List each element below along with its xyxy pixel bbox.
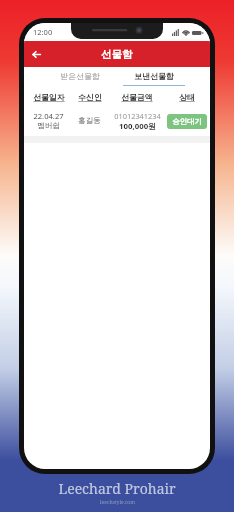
staticText: 100,000원 [119,121,156,132]
staticText: Leechard Prohair [58,479,176,498]
staticText: leechstyle.com [100,499,135,506]
staticText: 22.04.27 [33,111,64,121]
button[interactable]: 22.04.27 [24,106,210,136]
button[interactable]: 승인대기 [167,114,207,129]
button[interactable]: 받은선물함 [49,67,111,88]
staticText: 승인대기 [172,117,202,126]
staticText: 상태 [179,92,195,102]
staticText: 선물함 [101,48,133,61]
staticText: 홍길동 [78,116,101,126]
staticText: 받은선물함 [60,71,100,81]
staticText: 수신인 [78,92,102,102]
button[interactable]: 보낸선물함 [123,67,185,88]
staticText: 12:00 [33,27,53,37]
staticText: 선물일자 [33,92,65,102]
button[interactable]: Back [24,42,48,66]
staticText: 멤버쉽 [37,121,60,131]
staticText: 보낸선물함 [134,71,174,81]
staticText: 선물금액 [121,92,153,102]
staticText: 01012341234 [114,111,161,121]
